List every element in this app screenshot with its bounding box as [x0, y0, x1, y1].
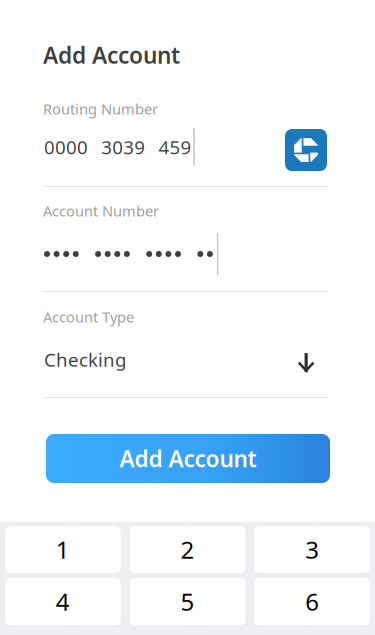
- staticText: Add Account: [43, 40, 180, 70]
- button[interactable]: 5: [130, 578, 245, 625]
- staticText: 6: [305, 586, 319, 617]
- staticText: Account Type: [43, 307, 134, 326]
- staticText: Checking: [44, 347, 126, 372]
- button[interactable]: Add Account: [46, 434, 330, 483]
- staticText: 3039: [101, 135, 145, 159]
- staticText: 3: [305, 534, 319, 565]
- button[interactable]: Choose account type: [298, 353, 314, 372]
- staticText: Routing Number: [43, 99, 158, 118]
- staticText: Account Number: [43, 201, 159, 220]
- button[interactable]: 4: [5, 578, 121, 625]
- button[interactable]: 2: [130, 526, 245, 573]
- button[interactable]: 1: [5, 526, 121, 573]
- staticText: 4: [56, 586, 70, 617]
- button[interactable]: 3: [254, 526, 370, 573]
- staticText: 2: [180, 534, 194, 565]
- button[interactable]: Chase Bank: [285, 129, 327, 171]
- staticText: Add Account: [119, 443, 256, 473]
- staticText: 1: [56, 534, 70, 565]
- staticText: 0000: [44, 135, 88, 159]
- staticText: 459: [158, 135, 191, 159]
- staticText: 5: [180, 586, 194, 617]
- button[interactable]: 6: [254, 578, 370, 625]
